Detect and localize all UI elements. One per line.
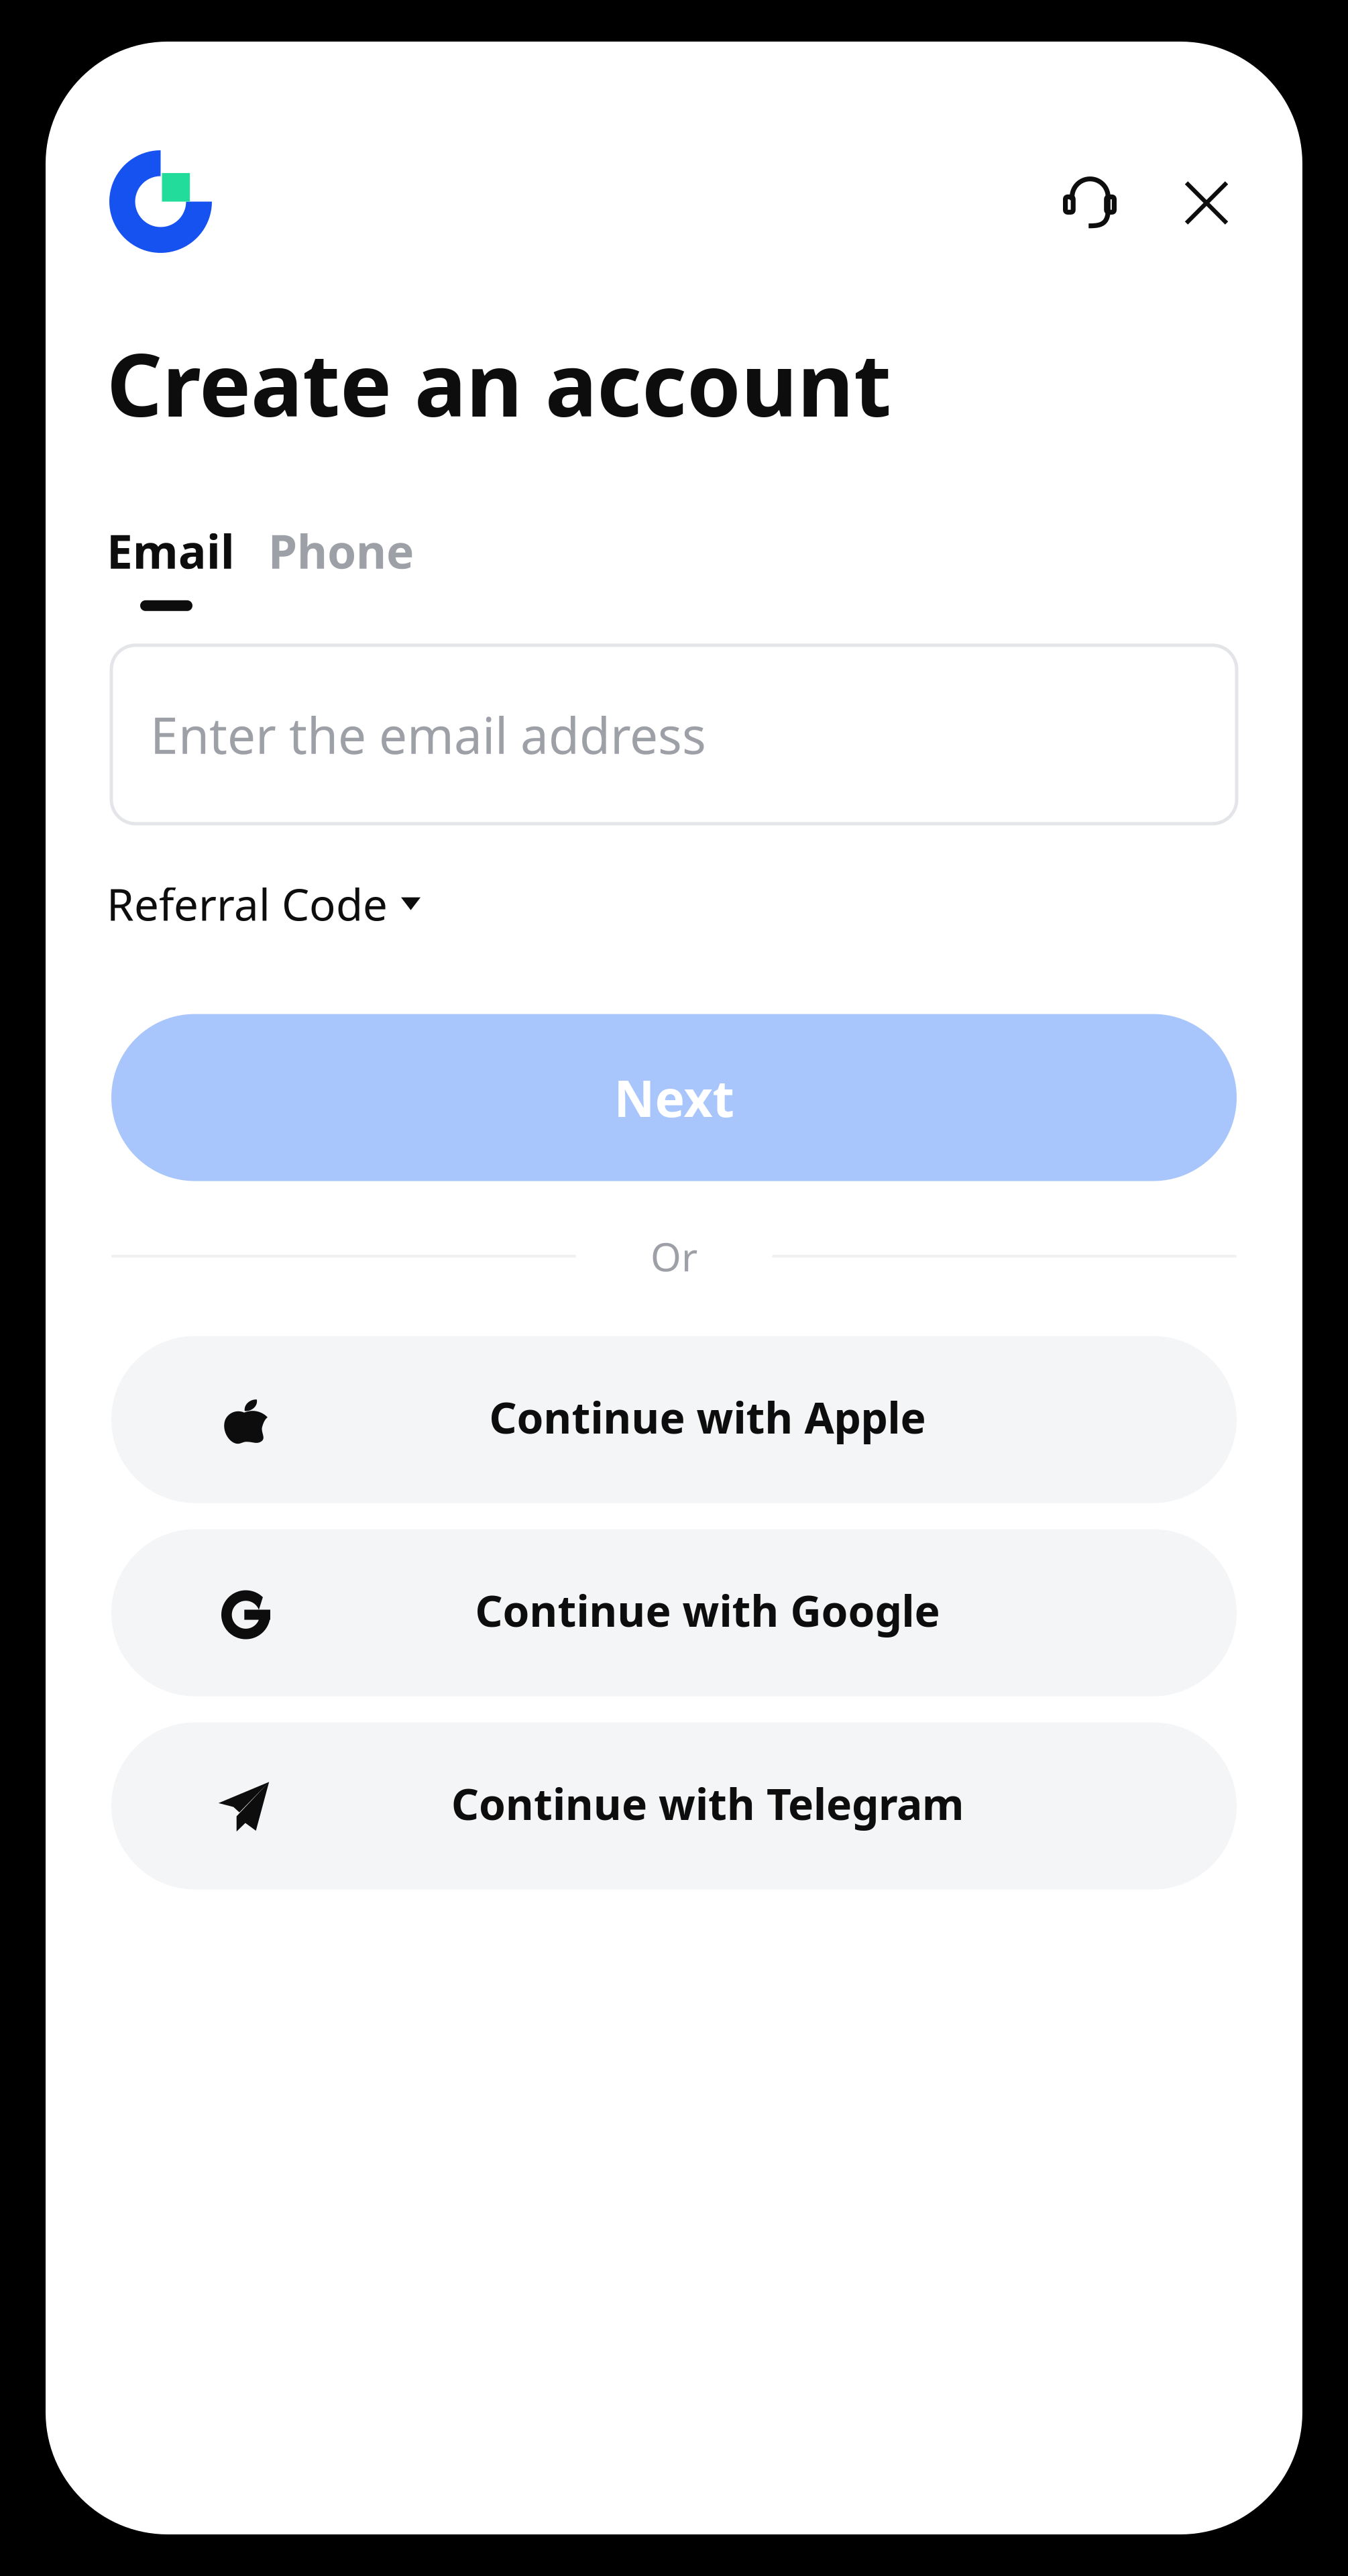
staticText: Continue with Google xyxy=(475,1582,940,1639)
button[interactable]: Next xyxy=(111,1014,1237,1181)
staticText: Create an account xyxy=(107,325,891,441)
button[interactable]: Close xyxy=(1170,165,1243,238)
staticText: Continue with Apple xyxy=(489,1388,926,1445)
button[interactable]: Referral Code xyxy=(107,875,420,933)
staticText: Or xyxy=(651,1230,697,1282)
button[interactable]: Email xyxy=(107,520,235,611)
button[interactable]: Continue with Google xyxy=(111,1529,1237,1696)
staticText: Continue with Telegram xyxy=(451,1775,964,1832)
staticText: Enter the email address xyxy=(150,701,706,768)
button[interactable]: Phone xyxy=(235,520,414,581)
staticText: Referral Code xyxy=(107,875,388,933)
staticText: Phone xyxy=(268,520,414,581)
button[interactable]: Continue with Telegram xyxy=(111,1722,1237,1889)
staticText: Next xyxy=(614,1064,734,1131)
button[interactable]: Continue with Apple xyxy=(111,1336,1237,1503)
button[interactable]: Customer support xyxy=(1053,165,1127,238)
staticText: Email xyxy=(107,520,235,581)
